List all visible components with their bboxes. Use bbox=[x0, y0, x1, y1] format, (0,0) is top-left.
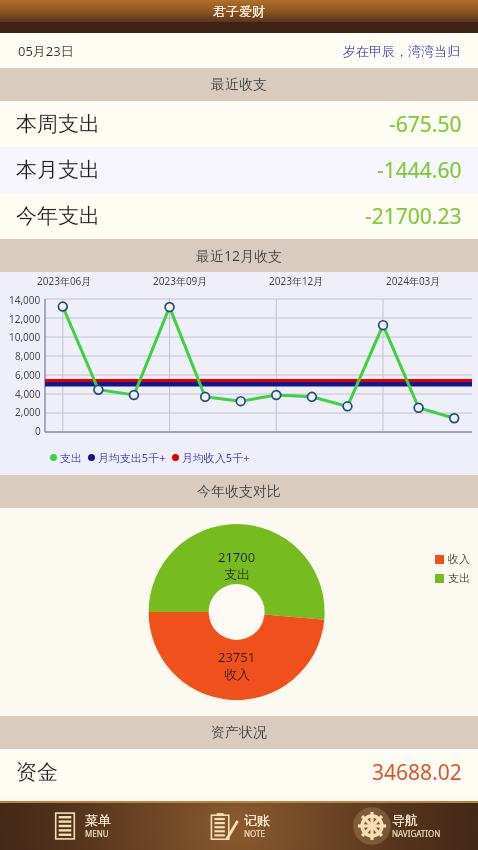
staticText: 2023年09月 bbox=[153, 274, 208, 288]
button[interactable]: Menu bbox=[0, 801, 160, 850]
staticText: 收入 bbox=[224, 666, 250, 682]
staticText: 2023年12月 bbox=[269, 274, 324, 288]
staticText: 资金 bbox=[16, 759, 58, 785]
staticText: 2023年06月 bbox=[37, 274, 92, 288]
staticText: 支出 bbox=[448, 571, 470, 585]
staticText: 今年支出 bbox=[16, 203, 100, 229]
staticText: 12,000 bbox=[9, 312, 41, 326]
staticText: 月均收入5千+ bbox=[179, 450, 250, 465]
staticText: -675.50 bbox=[389, 110, 462, 139]
button[interactable]: Note bbox=[160, 801, 319, 850]
button[interactable]: 今年支出 bbox=[0, 193, 478, 239]
staticText: 8,000 bbox=[15, 349, 41, 363]
staticText: 记账 bbox=[244, 812, 270, 828]
staticText: 菜单 bbox=[85, 812, 111, 828]
staticText: 导航 bbox=[392, 812, 418, 828]
staticText: 10,000 bbox=[9, 330, 41, 344]
button[interactable]: 最近收支 bbox=[0, 68, 478, 101]
staticText: 资产状况 bbox=[211, 724, 267, 742]
staticText: 最近12月收支 bbox=[196, 246, 283, 265]
staticText: 4,000 bbox=[15, 387, 41, 401]
staticText: 0 bbox=[35, 424, 41, 438]
staticText: MENU bbox=[85, 828, 109, 839]
button[interactable]: 本周支出 bbox=[0, 101, 478, 147]
button[interactable]: Navigation bbox=[319, 801, 478, 850]
staticText: 今年收支对比 bbox=[197, 483, 281, 501]
staticText: 05月23日 bbox=[18, 42, 74, 60]
staticText: 34688.02 bbox=[372, 758, 462, 787]
staticText: 23751 bbox=[218, 648, 256, 666]
staticText: 最近收支 bbox=[211, 76, 267, 94]
button[interactable]: 05月23日 bbox=[0, 33, 478, 68]
staticText: -1444.60 bbox=[377, 156, 462, 185]
staticText: 支出 bbox=[224, 566, 250, 582]
button[interactable]: 资金 bbox=[0, 749, 478, 795]
staticText: 岁在甲辰，湾湾当归 bbox=[343, 43, 460, 59]
button[interactable]: 本月支出 bbox=[0, 147, 478, 193]
button[interactable]: 今年收支对比 bbox=[0, 475, 478, 508]
staticText: 君子爱财 bbox=[213, 3, 265, 19]
staticText: NOTE bbox=[244, 828, 265, 839]
staticText: 收入 bbox=[448, 552, 470, 566]
button[interactable]: 资产状况 bbox=[0, 716, 478, 749]
staticText: -21700.23 bbox=[365, 202, 462, 231]
staticText: 6,000 bbox=[15, 368, 41, 382]
staticText: 14,000 bbox=[9, 293, 41, 307]
staticText: 2024年03月 bbox=[386, 274, 441, 288]
staticText: 支出 bbox=[57, 450, 88, 465]
staticText: 2,000 bbox=[15, 405, 41, 419]
staticText: 本周支出 bbox=[16, 111, 100, 137]
staticText: 月均支出5千+ bbox=[95, 450, 172, 465]
staticText: NAVIGATION bbox=[392, 828, 441, 839]
staticText: 本月支出 bbox=[16, 157, 100, 183]
button[interactable]: 最近12月收支 bbox=[0, 239, 478, 272]
staticText: 21700 bbox=[218, 548, 256, 566]
